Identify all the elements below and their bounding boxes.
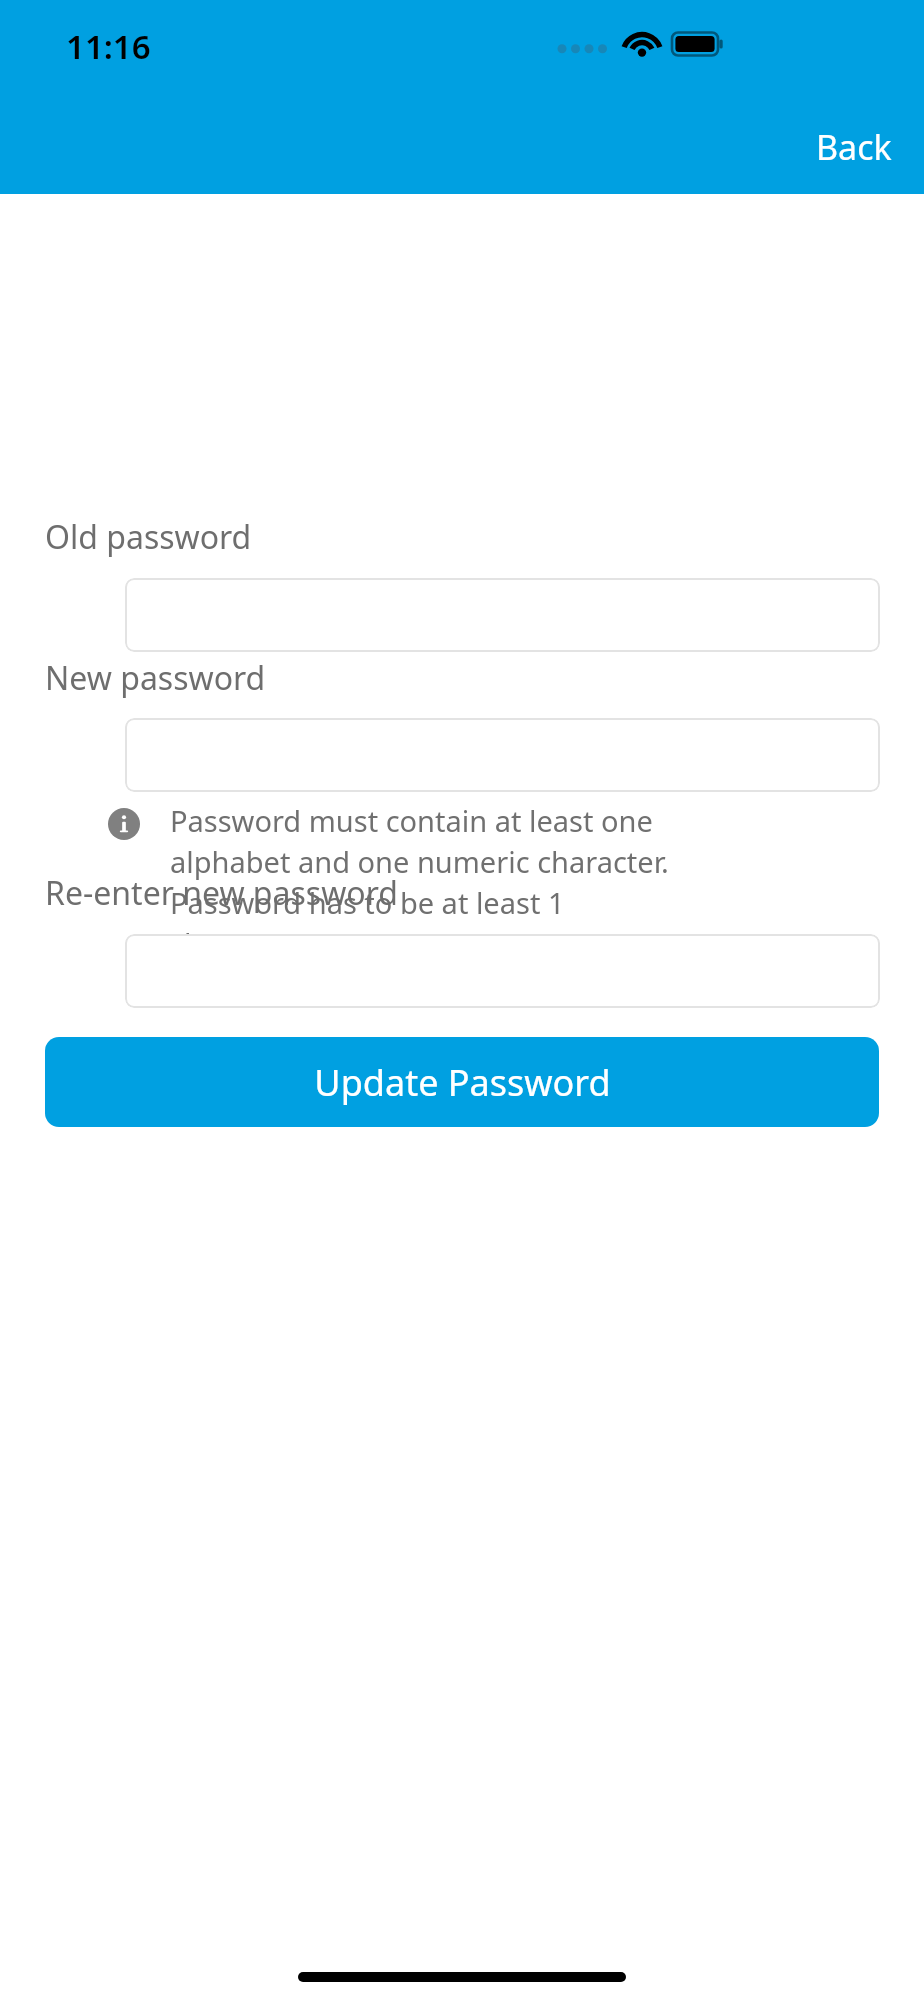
staticText: Update Password (314, 1058, 611, 1107)
button[interactable]: Password input field (125, 578, 880, 652)
button[interactable]: Back (806, 118, 902, 176)
staticText: Re-enter new password (45, 871, 398, 915)
button[interactable]: Password input field (125, 934, 880, 1008)
staticText: Back (816, 124, 892, 170)
button[interactable]: Update Password (45, 1037, 879, 1127)
staticText: New password (45, 656, 266, 700)
button[interactable]: Password input field (125, 718, 880, 792)
staticText: Old password (45, 515, 252, 559)
staticText: Password must contain at least one alpha… (170, 801, 708, 964)
staticText: 11:16 (66, 24, 151, 69)
